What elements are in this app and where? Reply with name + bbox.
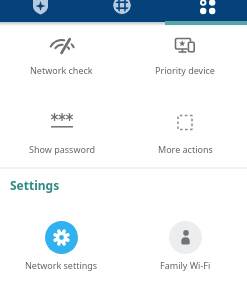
button[interactable]: Family Wi-Fi: [123, 221, 247, 271]
button[interactable]: Network check: [0, 35, 123, 76]
button[interactable]: Priority device: [123, 35, 247, 76]
staticText: Priority device: [155, 64, 215, 76]
staticText: Settings: [10, 177, 60, 193]
button[interactable]: More actions: [123, 111, 247, 155]
button[interactable]: Network settings: [0, 221, 123, 271]
staticText: More actions: [158, 143, 213, 155]
button[interactable]: [0, 0, 83, 22]
button[interactable]: [165, 0, 247, 22]
staticText: Network check: [30, 64, 93, 76]
staticText: Network settings: [25, 259, 98, 271]
button[interactable]: Show password: [0, 111, 123, 155]
staticText: Show password: [29, 143, 95, 155]
button[interactable]: [83, 0, 165, 22]
staticText: Family Wi-Fi: [160, 259, 211, 271]
